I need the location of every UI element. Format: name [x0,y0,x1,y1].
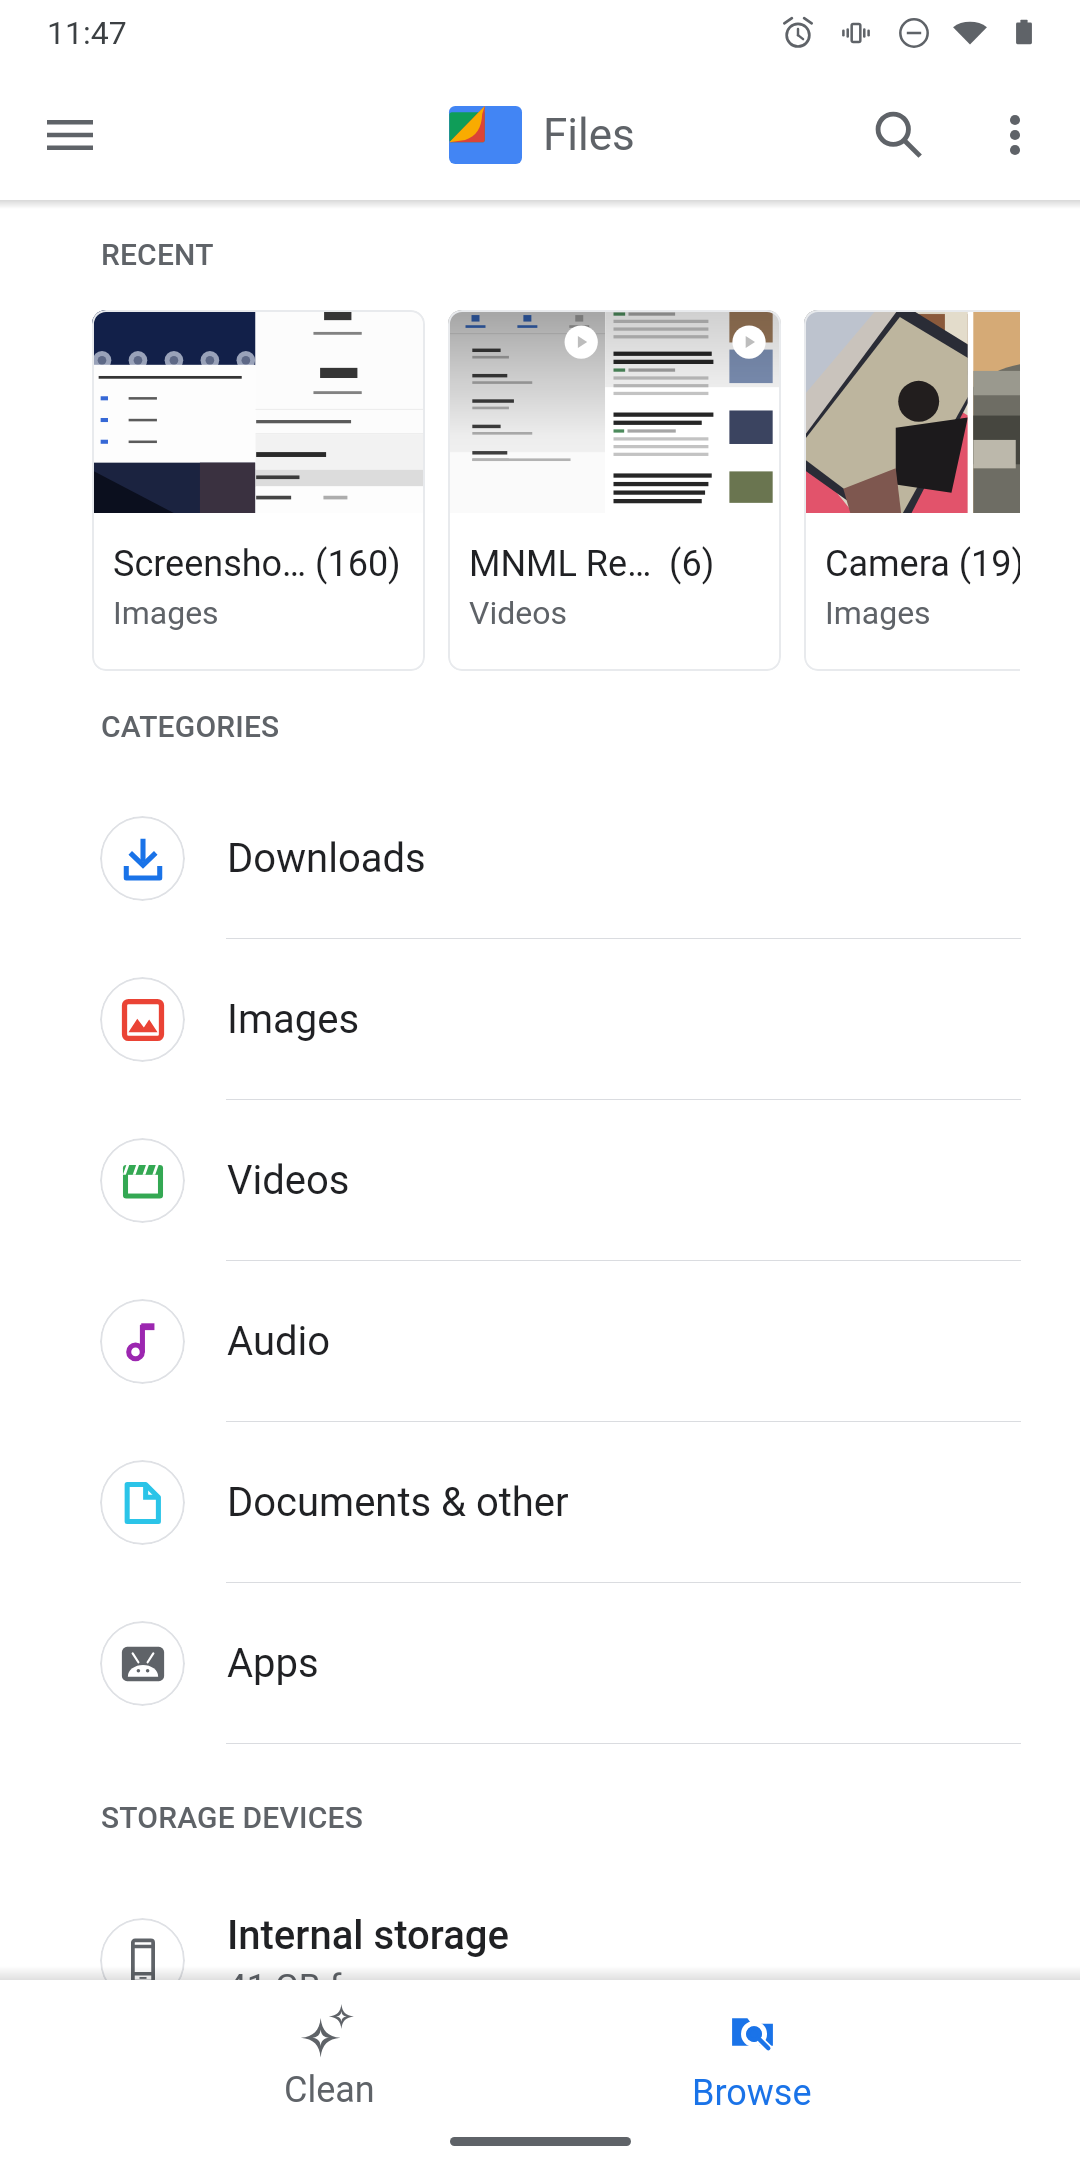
button[interactable]: Videos [0,1100,1080,1261]
staticText: Videos [227,1157,350,1204]
staticText: Browse [692,2072,812,2114]
staticText: 11:47 [47,14,127,52]
staticText: CATEGORIES [101,709,280,744]
button[interactable]: Clean [224,1980,435,2160]
button[interactable]: Search [845,81,953,189]
staticText: Images [113,594,219,632]
staticText: Apps [227,1640,319,1687]
button[interactable]: Downloads [0,778,1080,939]
staticText: Images [825,594,931,632]
button[interactable]: Screensho… (160) [92,310,425,671]
staticText: Clean [284,2069,375,2111]
button[interactable]: Audio [0,1261,1080,1422]
button[interactable]: Apps [0,1583,1080,1744]
staticText: STORAGE DEVICES [101,1800,364,1835]
staticText: 41 GB free [227,1967,391,2008]
staticText: Images [227,996,360,1043]
staticText: RECENT [101,237,214,272]
staticText: Screensho… (160) [113,543,401,585]
staticText: Audio [227,1318,331,1365]
button[interactable]: Documents & other [0,1422,1080,1583]
button[interactable]: Images [0,939,1080,1100]
staticText: Camera (19) [825,543,1020,585]
staticText: Downloads [227,835,426,882]
button[interactable]: Internal storage [0,1880,1080,2040]
staticText: Files [543,109,635,161]
staticText: MNML Re… (6) [469,543,715,585]
staticText: Documents & other [227,1479,569,1526]
staticText: Videos [469,594,567,632]
button[interactable]: Camera (19) [804,310,1020,671]
button[interactable]: MNML Re… (6) [448,310,781,671]
button[interactable]: More options [961,81,1069,189]
button[interactable]: Browse [646,1980,857,2160]
staticText: Internal storage [227,1912,509,1959]
button[interactable]: Navigation menu [16,81,124,189]
